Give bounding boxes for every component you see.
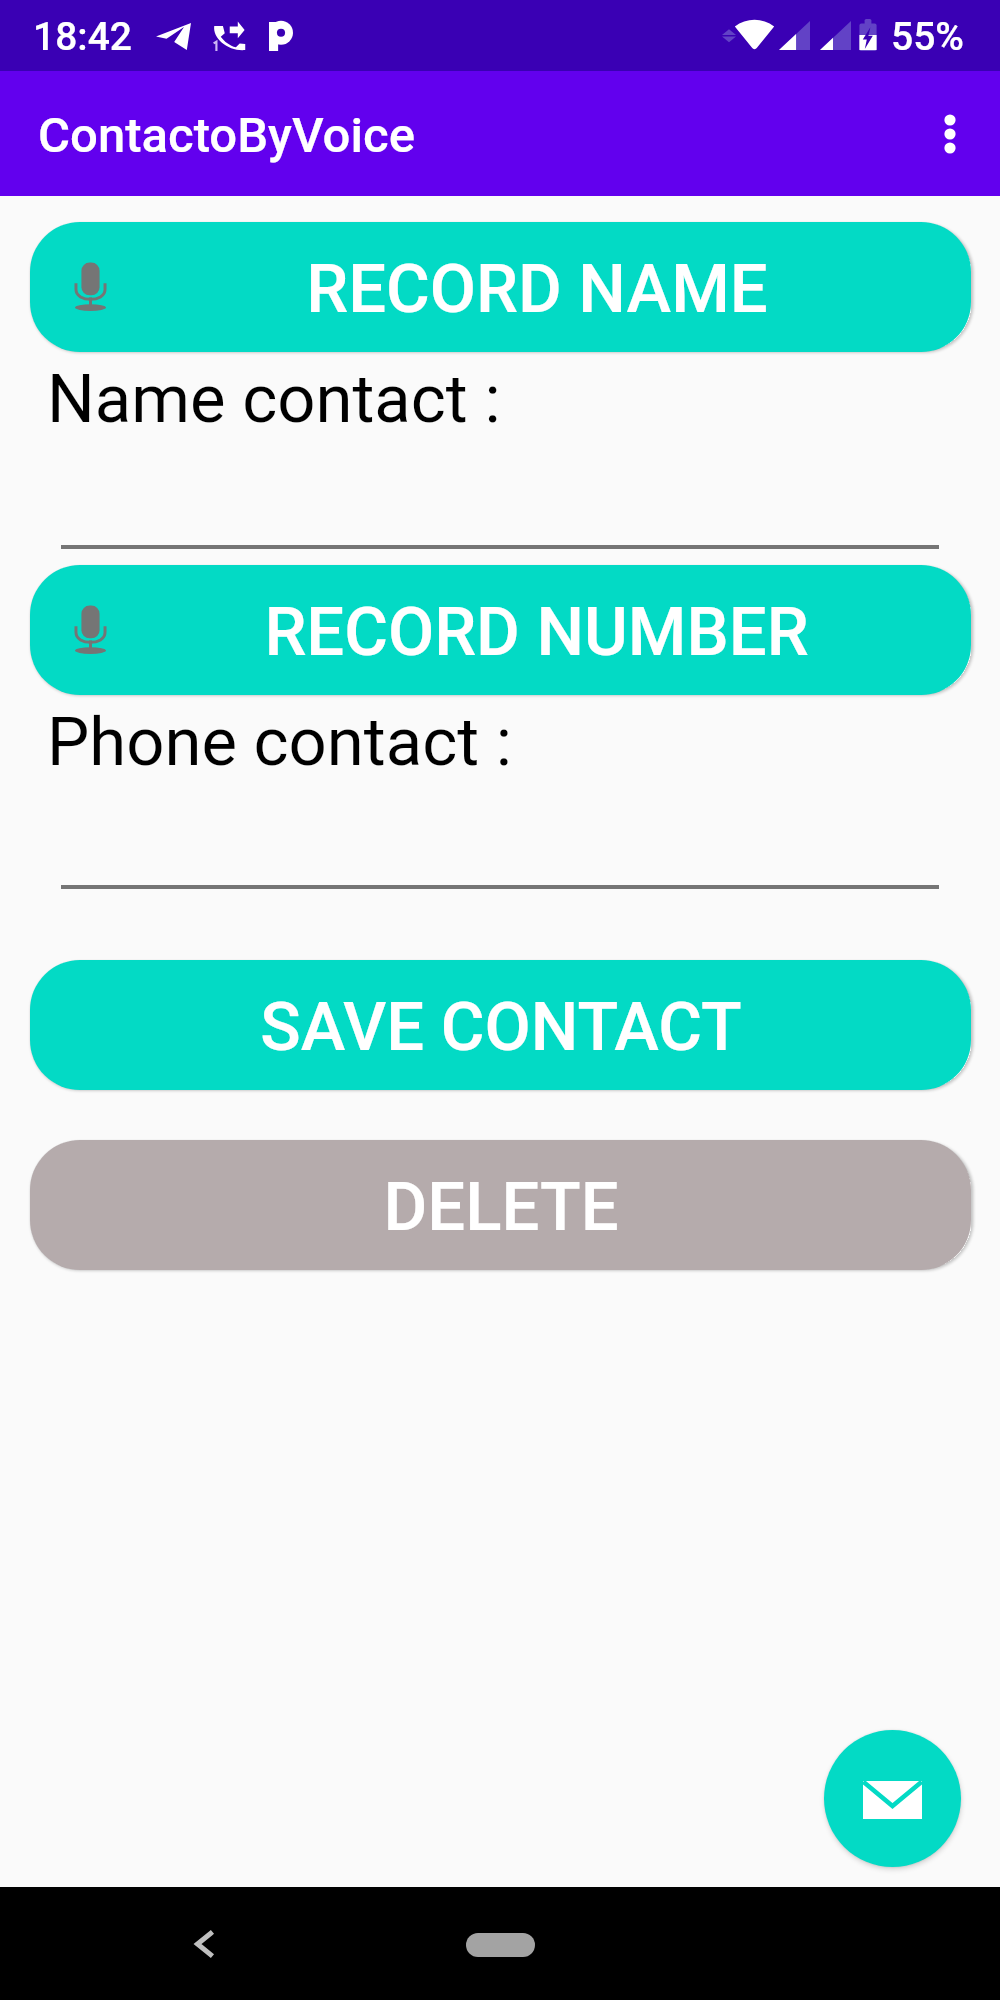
staticText: 55% — [891, 14, 964, 60]
button[interactable]: RECORD NAME — [30, 222, 971, 352]
button[interactable]: Back — [164, 1904, 244, 1984]
staticText: ContactoByVoice — [38, 107, 415, 164]
staticText: SAVE CONTACT — [260, 988, 742, 1067]
button[interactable]: DELETE — [30, 1140, 971, 1270]
staticText: Phone contact : — [47, 703, 513, 782]
staticText: 18:42 — [33, 14, 133, 60]
staticText: DELETE — [383, 1168, 619, 1247]
button[interactable]: Send email — [824, 1730, 961, 1867]
staticText: Name contact : — [47, 360, 501, 439]
staticText: RECORD NAME — [306, 250, 768, 329]
button[interactable]: More options — [907, 91, 993, 177]
button[interactable]: Contact phone field — [61, 789, 939, 889]
button[interactable]: SAVE CONTACT — [30, 960, 971, 1090]
button[interactable]: Home — [466, 1933, 535, 1957]
staticText: RECORD NUMBER — [264, 593, 809, 672]
button[interactable]: RECORD NUMBER — [30, 565, 971, 695]
button[interactable]: Contact name field — [61, 449, 939, 549]
